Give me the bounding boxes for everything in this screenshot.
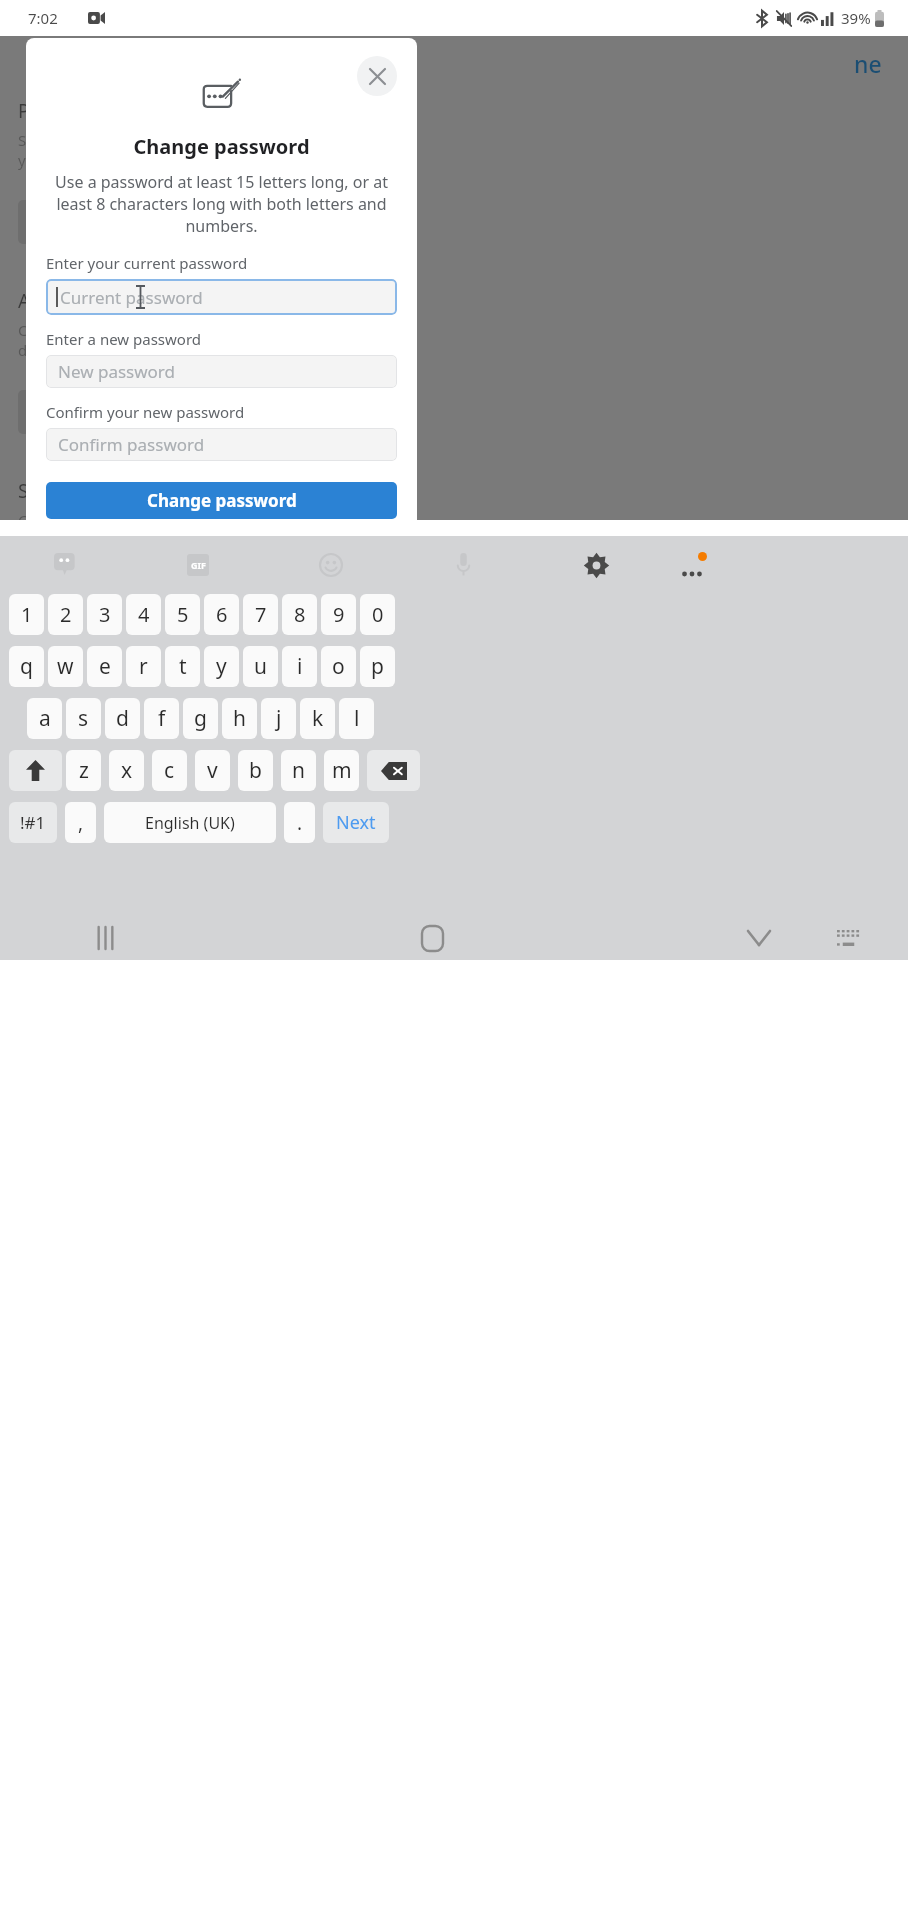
staticText: 8 [294, 601, 306, 628]
button[interactable]: Confirm password [46, 428, 397, 461]
staticText: . [297, 810, 303, 836]
button[interactable]: Hide keyboard [716, 916, 802, 960]
button[interactable]: New password [46, 355, 397, 388]
button[interactable]: Keyboard tool [311, 536, 351, 594]
staticText: GIF [191, 559, 206, 571]
staticText: 3 [99, 601, 111, 628]
staticText: 0 [372, 601, 384, 628]
button[interactable]: Keyboard tool [576, 536, 616, 594]
staticText: n [292, 756, 305, 785]
staticText: Use a password at least 15 letters long,… [48, 171, 395, 237]
button[interactable]: e [87, 646, 122, 687]
button[interactable]: j [261, 698, 296, 739]
button[interactable]: d [105, 698, 140, 739]
staticText: 39% [841, 8, 871, 28]
staticText: 6 [216, 601, 228, 628]
button[interactable]: 5 [165, 594, 200, 635]
button[interactable]: k [300, 698, 335, 739]
button[interactable]: p [360, 646, 395, 687]
button[interactable]: c [152, 750, 187, 791]
staticText: a [39, 704, 51, 733]
button[interactable]: 9 [321, 594, 356, 635]
button[interactable]: 2 [48, 594, 83, 635]
staticText: 5 [177, 601, 189, 628]
button[interactable]: Shift [9, 750, 62, 791]
button[interactable]: t [165, 646, 200, 687]
button[interactable]: y [204, 646, 239, 687]
button[interactable]: Current password [46, 279, 397, 315]
button[interactable]: Change password [46, 482, 397, 519]
button[interactable]: . [284, 802, 315, 843]
staticText: 4 [138, 601, 150, 628]
button[interactable]: m [324, 750, 359, 791]
button[interactable]: l [339, 698, 374, 739]
button[interactable]: 4 [126, 594, 161, 635]
button[interactable]: w [48, 646, 83, 687]
staticText: yo [18, 150, 35, 170]
button[interactable]: i [282, 646, 317, 687]
button[interactable]: b [238, 750, 273, 791]
button[interactable]: English (UK) [104, 802, 276, 843]
staticText: , [78, 810, 84, 836]
button[interactable]: Keyboard tool [46, 536, 86, 594]
button[interactable]: g [183, 698, 218, 739]
staticText: Confirm your new password [46, 402, 245, 422]
button[interactable]: Close [357, 56, 397, 96]
staticText: p [371, 652, 384, 681]
button[interactable]: Next [323, 802, 389, 843]
button[interactable]: v [195, 750, 230, 791]
staticText: Cu [18, 320, 37, 340]
staticText: v [207, 756, 218, 785]
button[interactable]: o [321, 646, 356, 687]
button[interactable]: u [243, 646, 278, 687]
button[interactable]: z [66, 750, 101, 791]
button[interactable]: !#1 [9, 802, 57, 843]
button[interactable]: 3 [87, 594, 122, 635]
staticText: Su [18, 478, 41, 504]
button[interactable]: x [109, 750, 144, 791]
staticText: f [158, 704, 166, 733]
staticText: 7:02 [28, 8, 58, 28]
staticText: 1 [21, 601, 33, 628]
button[interactable]: Change keyboard [802, 916, 894, 960]
staticText: y [216, 652, 227, 681]
button[interactable]: Recents [62, 916, 148, 960]
button[interactable]: Home [389, 916, 475, 960]
staticText: c [164, 756, 175, 785]
button[interactable]: Keyboard tool [672, 536, 712, 594]
staticText: Se [18, 130, 35, 150]
staticText: Current password [60, 286, 203, 309]
staticText: z [79, 756, 89, 785]
button[interactable]: f [144, 698, 179, 739]
button[interactable]: 8 [282, 594, 317, 635]
staticText: g [194, 704, 207, 733]
staticText: Change password [133, 133, 310, 160]
staticText: o [332, 652, 345, 681]
staticText: k [312, 704, 324, 733]
staticText: t [179, 652, 187, 681]
button[interactable]: 0 [360, 594, 395, 635]
staticText: e [99, 652, 111, 681]
button[interactable]: s [66, 698, 101, 739]
staticText: English (UK) [145, 812, 235, 834]
button[interactable]: n [281, 750, 316, 791]
staticText: Enter a new password [46, 329, 202, 349]
button[interactable]: 7 [243, 594, 278, 635]
button[interactable]: , [65, 802, 96, 843]
staticText: New password [58, 360, 176, 383]
staticText: Gr [18, 510, 36, 520]
button[interactable]: h [222, 698, 257, 739]
button[interactable]: Keyboard tool [178, 536, 218, 594]
staticText: r [139, 652, 148, 681]
staticText: Ap [18, 288, 42, 314]
button[interactable]: Backspace [367, 750, 420, 791]
button[interactable]: r [126, 646, 161, 687]
button[interactable]: q [9, 646, 44, 687]
staticText: Confirm password [58, 433, 205, 456]
staticText: d [116, 704, 129, 733]
button[interactable]: 1 [9, 594, 44, 635]
button[interactable]: a [27, 698, 62, 739]
button[interactable]: 6 [204, 594, 239, 635]
staticText: m [332, 756, 352, 785]
